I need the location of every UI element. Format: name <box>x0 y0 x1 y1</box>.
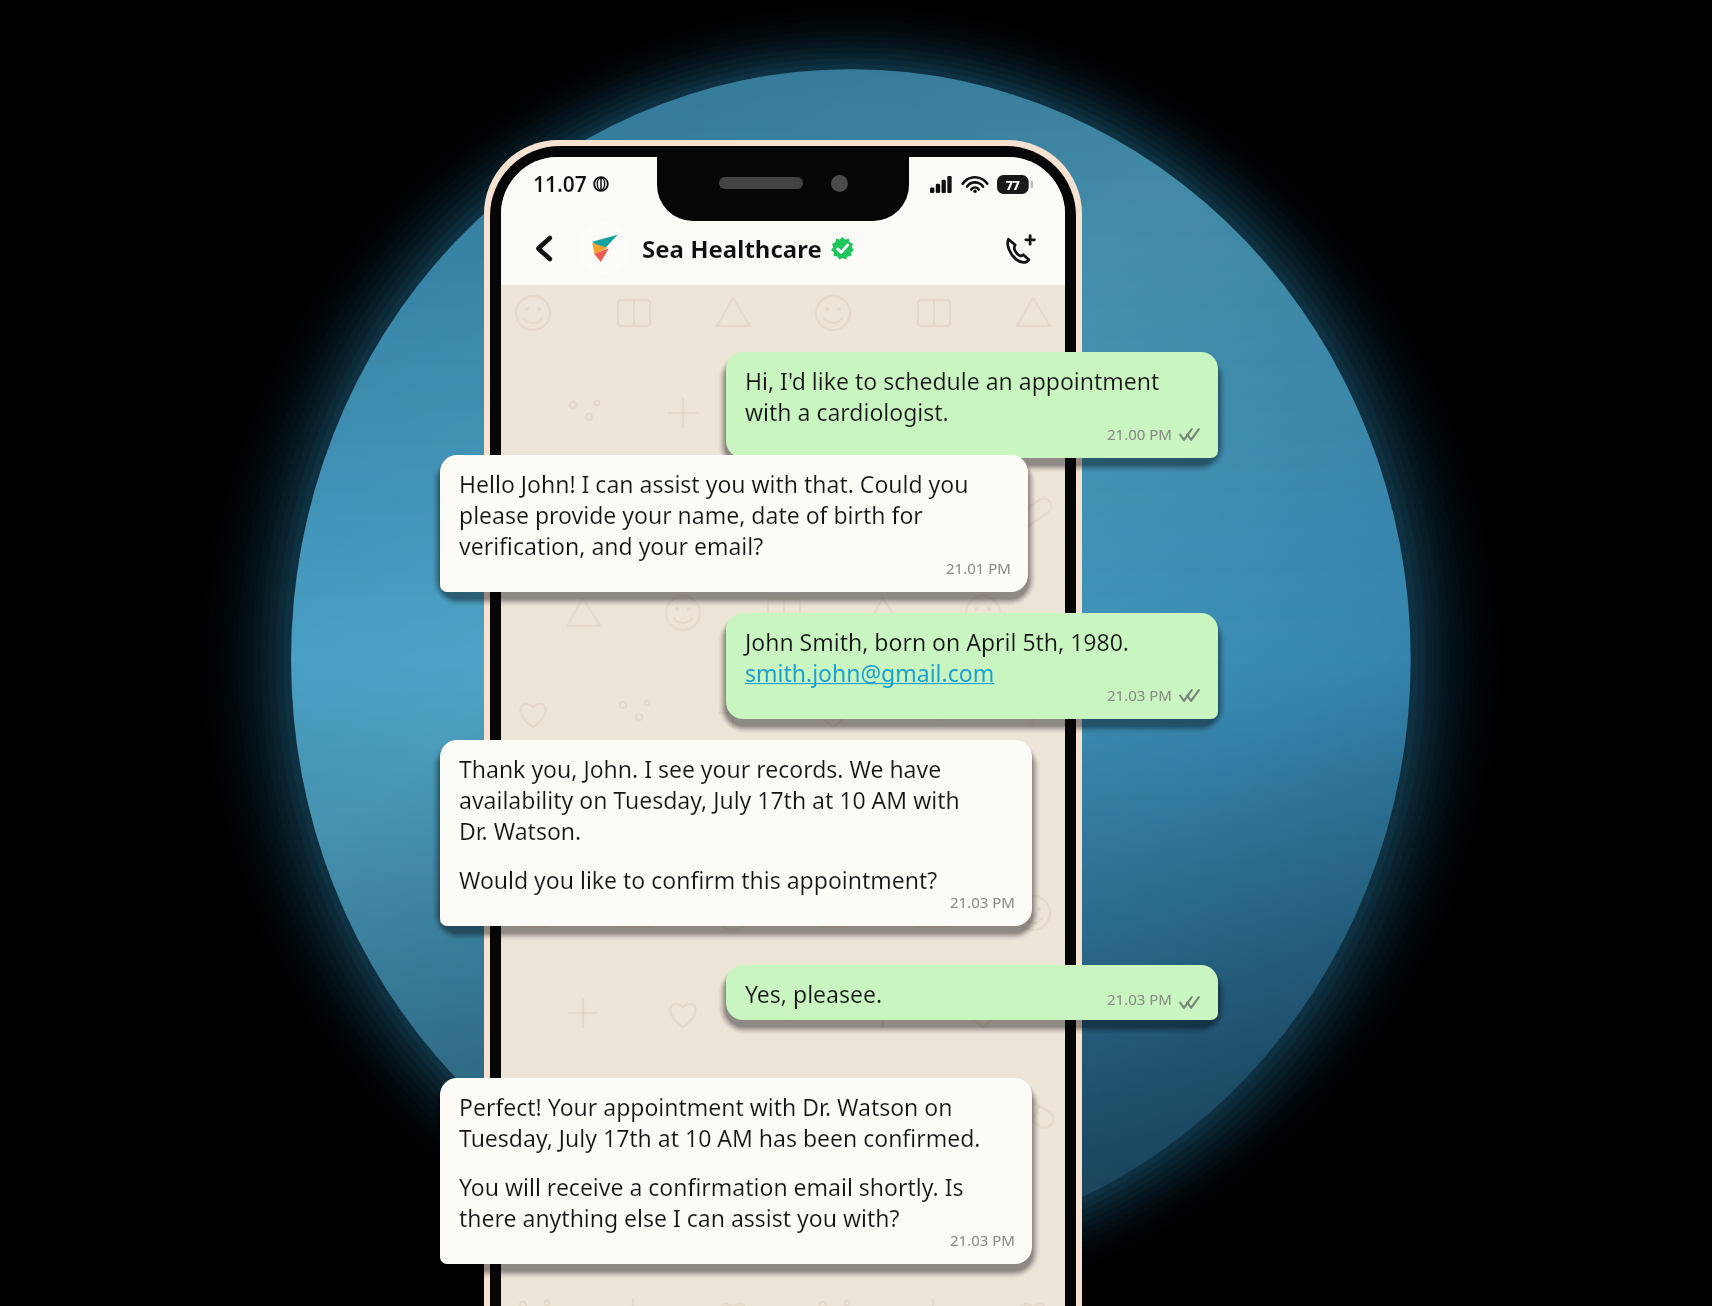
staticText: Perfect! Your appointment with Dr. Watso… <box>459 1091 953 1122</box>
staticText: You will receive a confirmation email sh… <box>459 1171 964 1202</box>
staticText: Thank you, John. I see your records. We … <box>459 753 942 784</box>
staticText: 21.00 PM <box>1107 424 1172 444</box>
staticText: please provide your name, date of birth … <box>459 499 923 530</box>
staticText: smith.john@gmail.com <box>745 657 995 688</box>
staticText: Yes, pleasee. <box>745 978 883 1009</box>
staticText: 11.07 <box>533 170 587 199</box>
staticText: Hi, I'd like to schedule an appointment <box>745 365 1160 396</box>
button[interactable]: Back <box>523 227 565 269</box>
staticText: Sea Healthcare <box>642 232 822 265</box>
staticText: Tuesday, July 17th at 10 AM has been con… <box>459 1122 981 1153</box>
staticText: 77 <box>1006 177 1020 193</box>
staticText: Dr. Watson. <box>459 815 582 846</box>
button[interactable]: Add call <box>997 225 1043 271</box>
staticText: availability on Tuesday, July 17th at 10… <box>459 784 960 815</box>
button[interactable]: Thank you, John. I see your records. We … <box>440 740 1032 926</box>
staticText: with a cardiologist. <box>745 396 949 427</box>
button[interactable]: Perfect! Your appointment with Dr. Watso… <box>440 1078 1032 1264</box>
button[interactable]: Hi, I'd like to schedule an appointment <box>726 352 1218 458</box>
staticText: 21.03 PM <box>1107 685 1172 705</box>
button[interactable]: Sea Healthcare profile <box>578 222 630 274</box>
button[interactable]: Hello John! I can assist you with that. … <box>440 455 1028 592</box>
staticText: there anything else I can assist you wit… <box>459 1202 900 1233</box>
button[interactable]: John Smith, born on April 5th, 1980. <box>726 613 1218 719</box>
staticText: John Smith, born on April 5th, 1980. <box>745 626 1129 657</box>
staticText: 21.03 PM <box>950 1230 1015 1250</box>
staticText: 21.01 PM <box>946 558 1011 578</box>
staticText: Would you like to confirm this appointme… <box>459 864 938 895</box>
staticText: Hello John! I can assist you with that. … <box>459 468 969 499</box>
button[interactable]: Yes, pleasee. <box>726 965 1218 1020</box>
staticText: 21.03 PM <box>950 892 1015 912</box>
staticText: verification, and your email? <box>459 530 764 561</box>
staticText: 21.03 PM <box>1107 989 1172 1009</box>
